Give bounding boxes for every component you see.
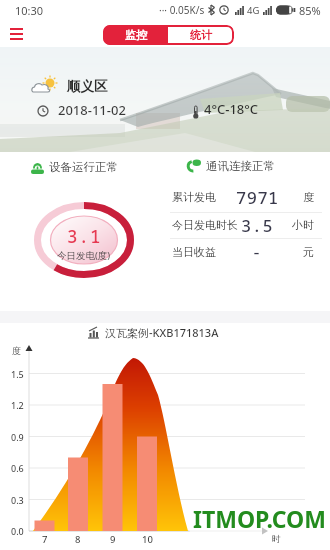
staticText: 0.6 — [11, 462, 24, 474]
button[interactable] — [10, 28, 23, 40]
staticText: - — [252, 242, 262, 262]
staticText: ITMOP.COM — [193, 503, 326, 534]
staticText: 统计 — [190, 28, 212, 42]
staticText: 10 — [142, 533, 153, 546]
staticText: 3.1 — [67, 224, 102, 246]
staticText: 85% — [299, 3, 321, 18]
staticText: 通讯连接正常 — [206, 159, 275, 173]
staticText: 4G — [247, 4, 260, 17]
staticText: 顺义区 — [67, 78, 108, 95]
staticText: 0.9 — [11, 431, 24, 443]
staticText: 4°C-18°C — [204, 100, 259, 118]
staticText: 0.3 — [11, 494, 24, 506]
staticText: 小时 — [292, 218, 314, 232]
staticText: 8 — [75, 533, 81, 546]
staticText: 3.5 — [241, 214, 274, 237]
staticText: 0.0 — [11, 525, 24, 537]
staticText: 1.5 — [11, 368, 24, 380]
staticText: 度 — [12, 345, 21, 356]
staticText: 2018-11-02 — [58, 101, 126, 119]
staticText: 度 — [303, 190, 314, 204]
staticText: 汉瓦案例-KXB171813A — [105, 325, 219, 340]
staticText: 今日发电(度) — [57, 249, 111, 262]
staticText: 监控 — [125, 28, 147, 42]
staticText: 7 — [42, 533, 48, 546]
staticText: 1.2 — [11, 399, 24, 411]
staticText: 7971 — [236, 186, 279, 209]
staticText: 元 — [303, 245, 314, 259]
staticText: 设备运行正常 — [49, 160, 118, 174]
staticText: 累计发电 — [172, 190, 216, 204]
staticText: 9 — [110, 533, 116, 546]
staticText: 时 — [272, 533, 281, 544]
staticText: 当日收益 — [172, 245, 216, 259]
staticText: 今日发电时长 — [172, 218, 238, 232]
button[interactable]: 监控 — [103, 25, 168, 45]
button[interactable]: 统计 — [168, 25, 234, 45]
staticText: ··· 0.05K/s — [159, 3, 205, 17]
staticText: 10:30 — [15, 3, 44, 18]
